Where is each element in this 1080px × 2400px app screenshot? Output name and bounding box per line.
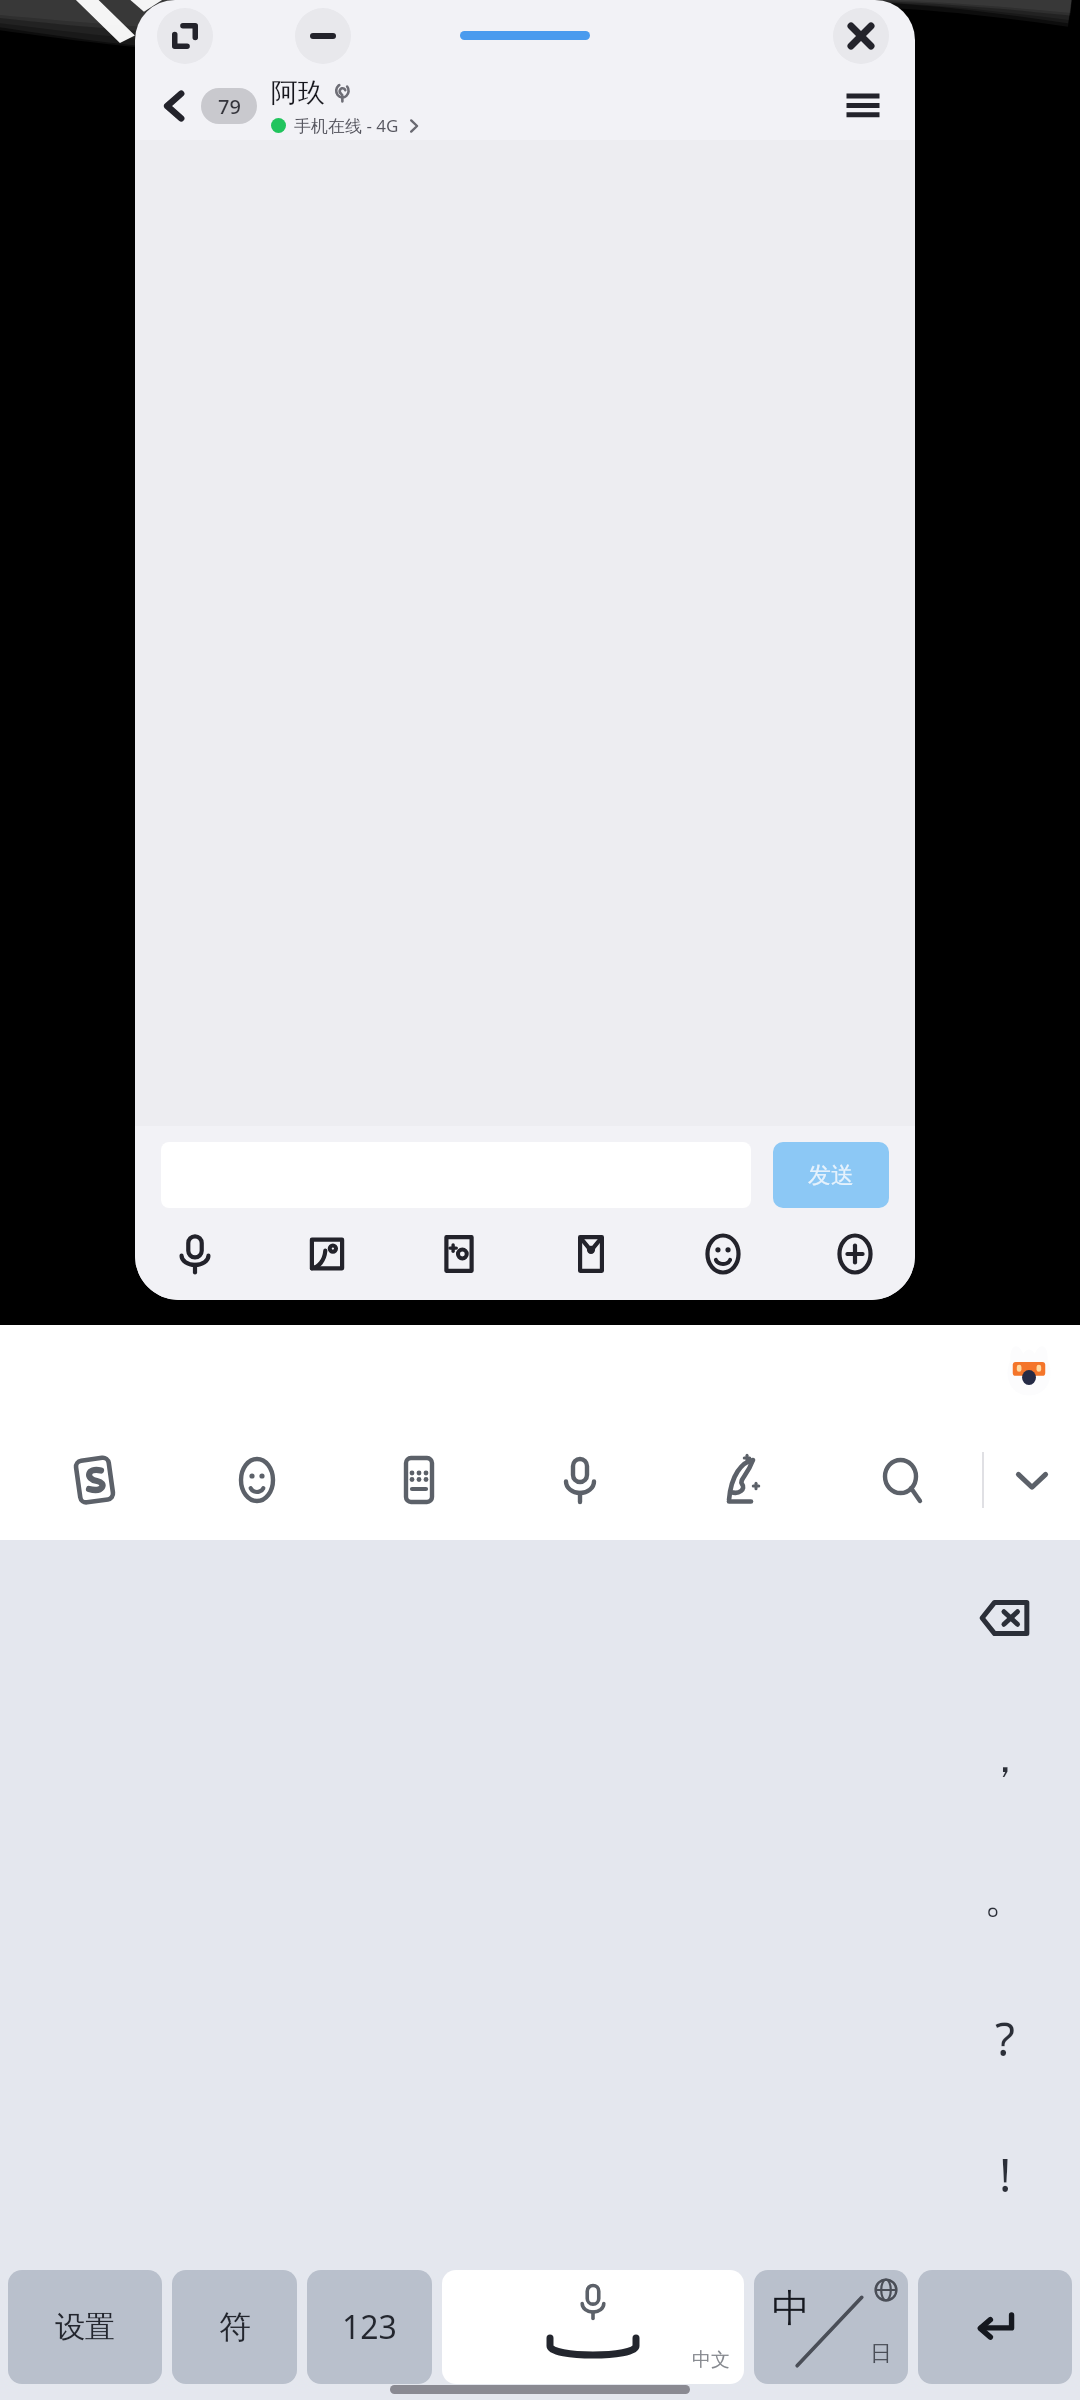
button[interactable]: 79	[201, 88, 257, 124]
button[interactable]: More	[819, 1218, 891, 1290]
button[interactable]: 符	[172, 2270, 297, 2384]
staticText: 阿玖	[271, 76, 325, 110]
button[interactable]: Voice message	[159, 1218, 231, 1290]
button[interactable]: Close	[833, 8, 889, 64]
staticText: ?	[995, 2007, 1015, 2070]
button[interactable]: Red packet	[555, 1218, 627, 1290]
staticText: !	[999, 2143, 1012, 2206]
button[interactable]: Minimise	[295, 8, 351, 64]
button[interactable]: Keyboard layout	[338, 1420, 499, 1540]
button[interactable]: Back	[149, 80, 201, 132]
button[interactable]: 发送	[773, 1142, 889, 1208]
button[interactable]: Handwriting	[660, 1420, 821, 1540]
button[interactable]: Menu	[835, 78, 891, 134]
staticText: 79	[218, 93, 241, 120]
button[interactable]: Delete	[930, 1548, 1080, 1688]
staticText: ，	[984, 1732, 1026, 1785]
button[interactable]: Assistant	[998, 1339, 1060, 1401]
staticText: 123	[342, 2305, 397, 2349]
button[interactable]: 设置	[8, 2270, 162, 2384]
button[interactable]: 阿玖	[271, 76, 835, 137]
button[interactable]: Sogou	[14, 1420, 176, 1540]
button[interactable]: Sticker	[423, 1218, 495, 1290]
button[interactable]: 中	[754, 2270, 908, 2384]
button[interactable]: ，	[930, 1688, 1080, 1828]
button[interactable]: Emoji	[687, 1218, 759, 1290]
staticText: 中	[772, 2284, 810, 2332]
button[interactable]: ？	[930, 1968, 1080, 2108]
button[interactable]: ！	[930, 2108, 1080, 2240]
button[interactable]: Emoji	[176, 1420, 338, 1540]
staticText: 手机在线 - 4G	[294, 114, 399, 137]
button[interactable]: 中文	[442, 2270, 744, 2384]
button[interactable]: 。	[930, 1828, 1080, 1968]
staticText: 发送	[808, 1161, 854, 1190]
button[interactable]: Photo	[291, 1218, 363, 1290]
button[interactable]	[918, 2270, 1072, 2384]
button[interactable]: Hide keyboard	[984, 1420, 1080, 1540]
button[interactable]: Expand	[157, 8, 213, 64]
staticText: 中文	[692, 2348, 730, 2372]
button[interactable]: 123	[307, 2270, 432, 2384]
button[interactable]: Voice input	[499, 1420, 660, 1540]
staticText: 。	[984, 1872, 1026, 1925]
staticText: 日	[870, 2340, 892, 2368]
staticText: 符	[219, 2307, 251, 2347]
staticText: 设置	[55, 2308, 115, 2346]
button[interactable]: Search	[821, 1420, 982, 1540]
